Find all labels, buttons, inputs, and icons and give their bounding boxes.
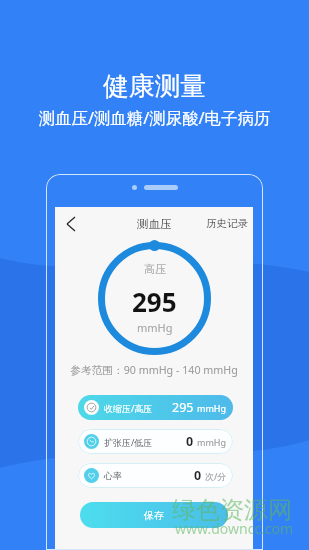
staticText: 测血压	[137, 217, 172, 231]
staticText: mmHg	[197, 402, 227, 414]
staticText: 保存	[144, 509, 164, 522]
staticText: 健康测量	[0, 70, 309, 103]
button[interactable]: 收缩压/高压	[78, 395, 233, 420]
staticText: 收缩压/高压	[104, 402, 153, 414]
staticText: www.downcc.com	[175, 519, 294, 538]
staticText: 295	[172, 399, 194, 416]
staticText: 0	[186, 433, 194, 450]
button[interactable]: 扩张压/低压	[78, 429, 233, 454]
staticText: mmHg	[197, 436, 227, 448]
button[interactable]: 历史记录	[201, 211, 253, 236]
button[interactable]: 心率	[78, 463, 233, 488]
staticText: 绿色资源网	[172, 495, 292, 525]
staticText: 参考范围：90 mmHg - 140 mmHg	[55, 363, 253, 378]
button[interactable]: 保存	[80, 502, 228, 528]
button[interactable]: Back	[60, 213, 82, 235]
staticText: mmHg	[137, 320, 173, 335]
staticText: 295	[132, 284, 177, 319]
staticText: 高压	[144, 262, 166, 276]
staticText: 测血压/测血糖/测尿酸/电子病历	[0, 106, 309, 128]
staticText: 0	[194, 467, 202, 484]
staticText: 扩张压/低压	[104, 436, 153, 448]
staticText: 次/分	[205, 470, 227, 482]
staticText: 历史记录	[206, 217, 248, 230]
staticText: 心率	[104, 470, 122, 481]
